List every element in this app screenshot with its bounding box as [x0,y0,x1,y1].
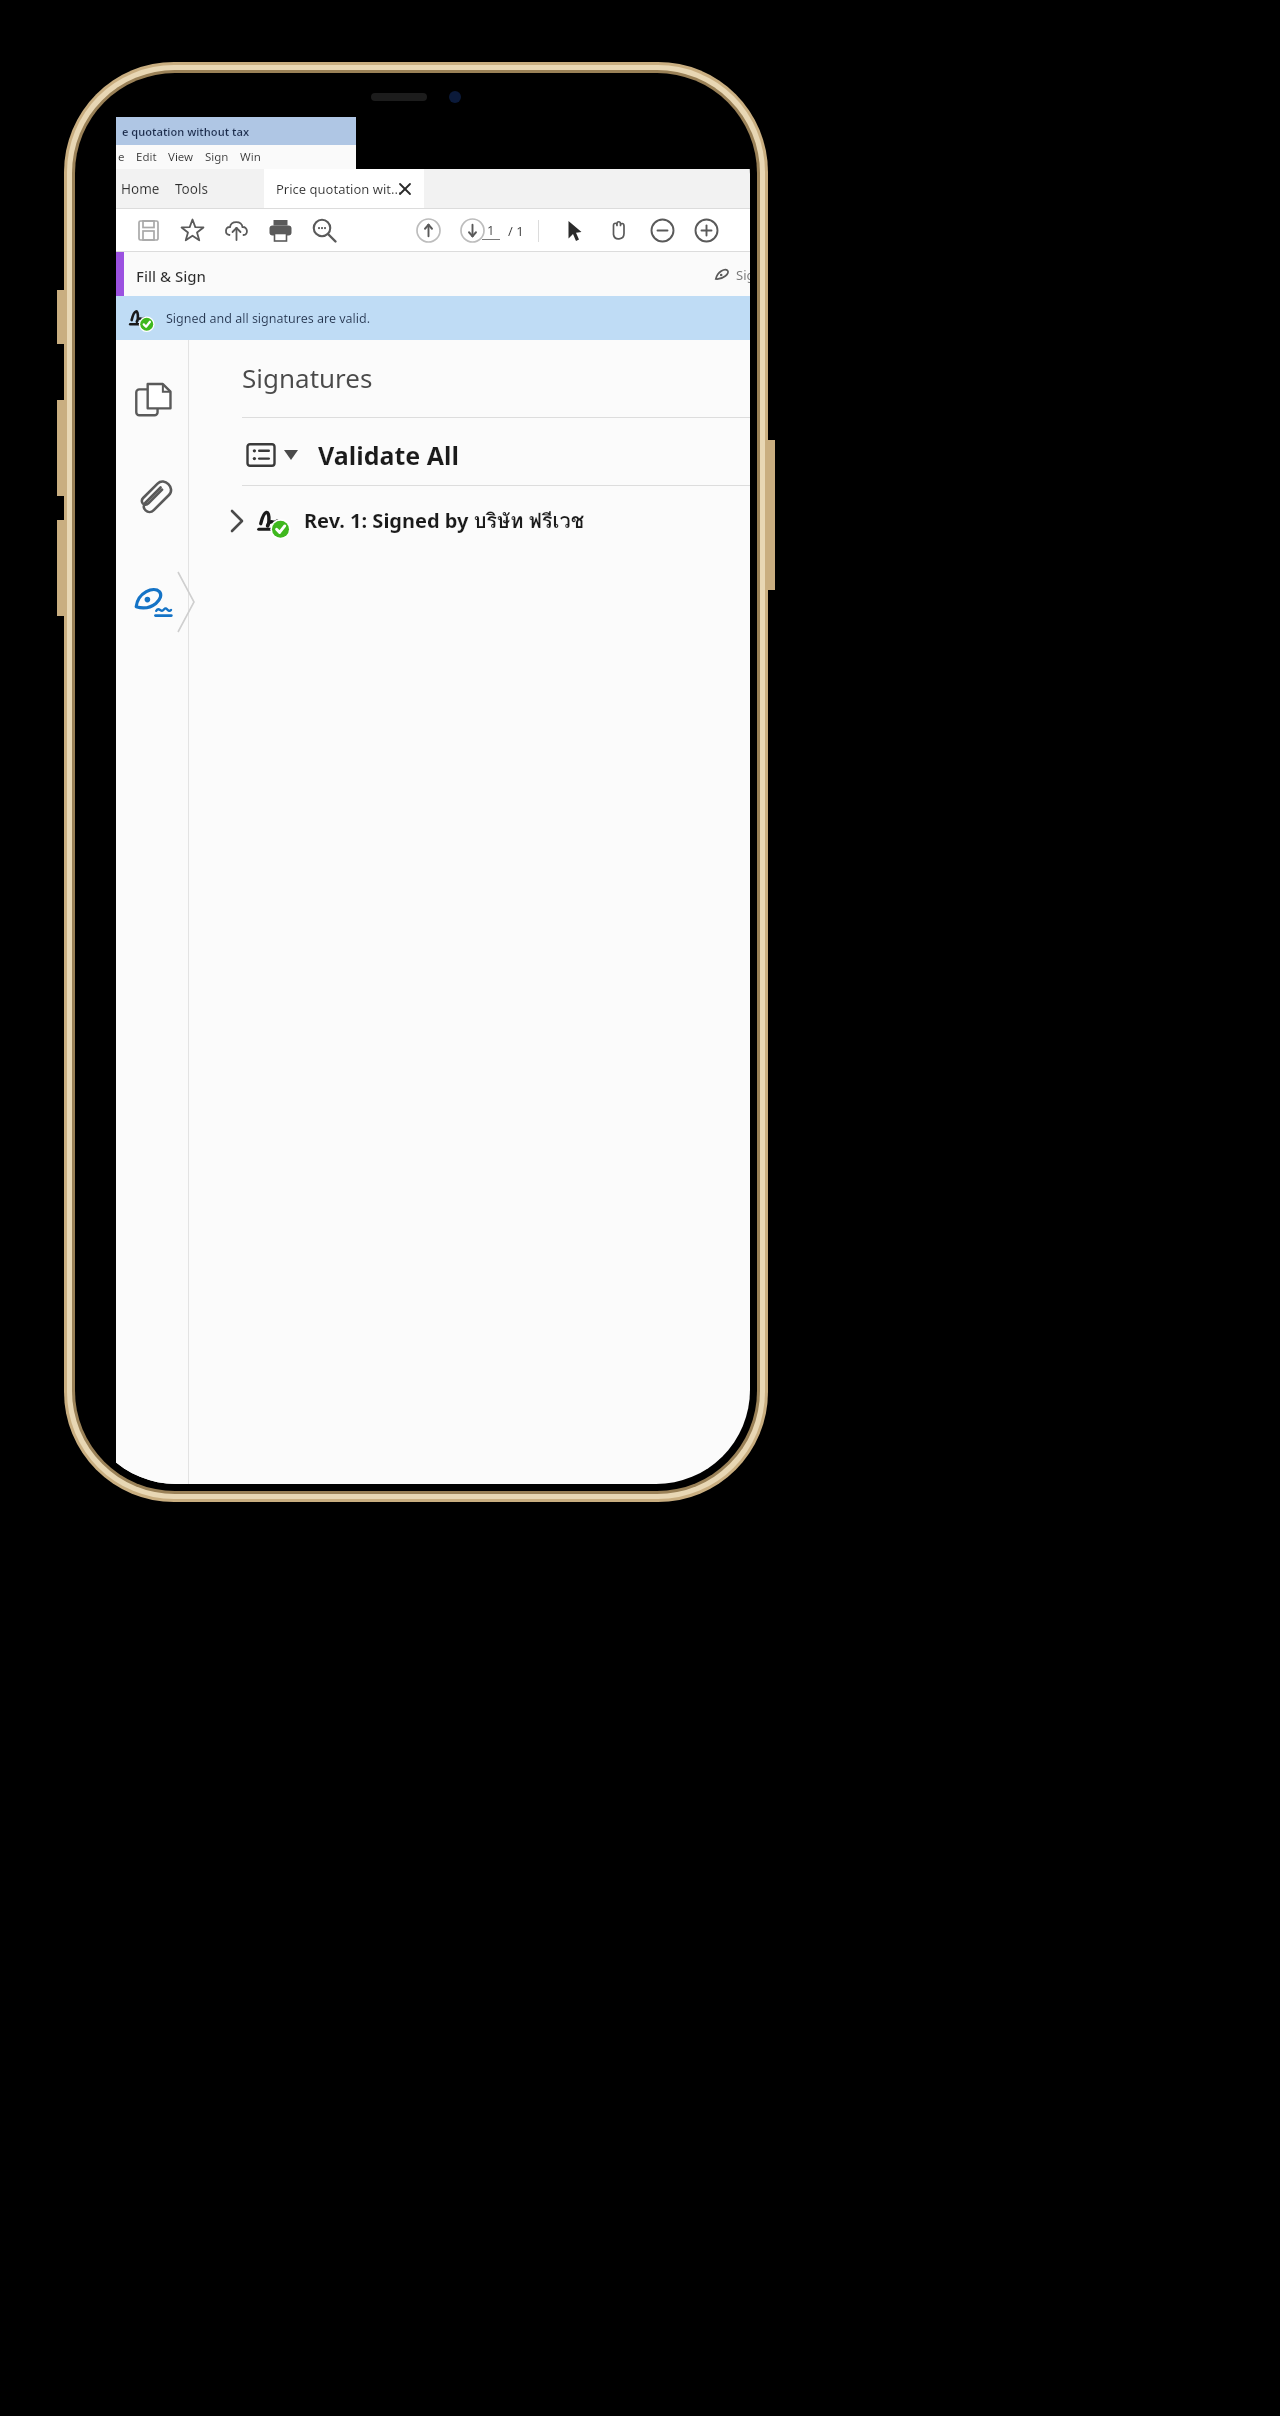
button[interactable]: Win [240,149,261,165]
button[interactable]: Next page [450,209,494,252]
staticText: e quotation without tax [122,124,250,139]
button[interactable]: Validate All [232,425,750,485]
button[interactable]: View [168,149,194,165]
button[interactable]: e [118,149,125,165]
button[interactable]: Sign [205,149,229,165]
staticText: Validate All [318,438,459,472]
button[interactable]: Hand tool [596,209,640,252]
button[interactable]: Previous page [406,209,450,252]
staticText: Home [121,180,160,198]
button[interactable]: Signatures panel [128,577,178,627]
button[interactable]: Home [116,169,164,209]
staticText: 1 [487,221,495,239]
staticText: Signatures [242,360,373,395]
button[interactable]: Attachments [128,470,178,520]
button[interactable]: Select tool [552,209,596,252]
staticText: Sig [736,266,750,284]
button[interactable]: Print [258,209,302,252]
button[interactable]: Tools [164,169,218,209]
staticText: Signed and all signatures are valid. [166,310,371,327]
staticText: Fill & Sign [136,266,206,286]
staticText: Rev. 1: Signed by บริษัท ฟรีเวช [304,505,585,537]
button[interactable]: Edit [136,149,157,165]
button[interactable]: Search [302,209,346,252]
button[interactable]: Upload to cloud [214,209,258,252]
button[interactable]: Close tab [396,180,414,198]
button[interactable]: Price quotation wit... [264,169,424,209]
button[interactable]: Page thumbnails [128,375,178,425]
button[interactable]: Zoom in [684,209,728,252]
staticText: / 1 [508,222,524,240]
button[interactable]: Zoom out [640,209,684,252]
staticText: Tools [175,180,208,198]
button[interactable]: Save [126,209,170,252]
button[interactable]: Add to favourites [170,209,214,252]
button[interactable]: Rev. 1: Signed by บริษัท ฟรีเวช [222,492,750,550]
staticText: Price quotation wit... [276,180,402,198]
